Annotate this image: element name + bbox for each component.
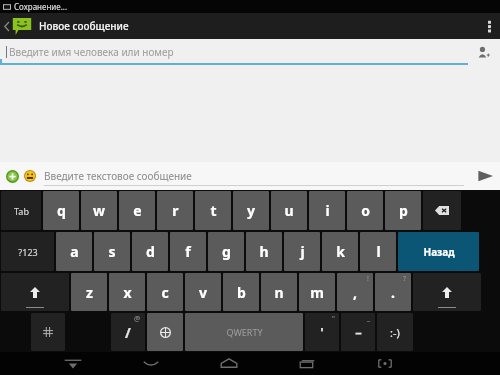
staticText: , [353, 283, 357, 302]
button[interactable]: k [322, 232, 358, 271]
button[interactable]: u [271, 191, 307, 230]
button[interactable] [413, 273, 481, 311]
button[interactable]: Screenshot [372, 352, 398, 375]
staticText: ' [320, 323, 324, 341]
staticText: j [300, 242, 305, 261]
staticText: k [336, 242, 345, 261]
button[interactable]: Введите имя человека или номер [6, 39, 466, 65]
staticText: f [185, 242, 191, 261]
staticText: h [259, 242, 269, 261]
staticText: y [247, 201, 255, 220]
button[interactable]: o [347, 191, 383, 230]
button[interactable]: f [170, 232, 206, 271]
staticText: q [57, 201, 66, 220]
button[interactable]: ?123 [1, 232, 54, 271]
button[interactable]: Emoji [22, 168, 38, 184]
staticText: ?123 [18, 246, 38, 258]
staticText: v [199, 283, 207, 302]
staticText: w [93, 201, 105, 220]
button[interactable]: j [284, 232, 320, 271]
staticText: i [325, 201, 330, 220]
button[interactable]: g [208, 232, 244, 271]
button[interactable]: a [56, 232, 92, 271]
staticText: " [332, 314, 335, 324]
button[interactable]: m [299, 273, 335, 311]
button[interactable]: Add contact [466, 39, 500, 65]
staticText: a [70, 242, 79, 261]
staticText: Новое сообщение [39, 19, 129, 33]
staticText: . [391, 283, 395, 302]
button[interactable]: c [147, 273, 183, 311]
button[interactable]: Новое сообщение [0, 13, 135, 39]
staticText: m [310, 283, 324, 302]
button[interactable]: Attach [4, 168, 20, 184]
staticText: o [361, 201, 370, 220]
staticText: _ [367, 314, 371, 324]
staticText: Назад [423, 245, 455, 259]
button[interactable]: / [111, 313, 145, 351]
button[interactable]: Send [470, 162, 500, 190]
button[interactable]: – [341, 313, 375, 351]
button[interactable]: , [337, 273, 373, 311]
button[interactable]: . [375, 273, 411, 311]
button[interactable] [31, 313, 65, 351]
button[interactable]: t [195, 191, 231, 230]
staticText: r [172, 201, 179, 220]
staticText: x [123, 283, 132, 302]
staticText: Введите имя человека или номер [9, 45, 174, 59]
button[interactable]: e [119, 191, 155, 230]
button[interactable]: x [109, 273, 145, 311]
button[interactable]: q [43, 191, 79, 230]
staticText: QWERTY [226, 326, 263, 338]
button[interactable]: h [246, 232, 282, 271]
button[interactable]: Recent apps [294, 352, 320, 375]
staticText: / [125, 323, 131, 342]
staticText: Введите текстовое сообщение [44, 169, 192, 183]
staticText: l [376, 242, 381, 261]
staticText: c [161, 283, 169, 302]
button[interactable]: Tab [1, 191, 41, 230]
staticText: :-) [390, 325, 400, 340]
button[interactable]: Back [138, 352, 164, 375]
button[interactable]: v [185, 273, 221, 311]
button[interactable]: s [94, 232, 130, 271]
button[interactable]: i [309, 191, 345, 230]
button[interactable]: b [223, 273, 259, 311]
staticText: Tab [14, 205, 29, 217]
staticText: n [274, 283, 284, 302]
button[interactable]: QWERTY [185, 313, 303, 351]
staticText: p [399, 201, 408, 220]
button[interactable]: Home [216, 352, 242, 375]
button[interactable]: Hide keyboard [60, 352, 86, 375]
staticText: z [86, 283, 93, 302]
button[interactable]: p [385, 191, 421, 230]
button[interactable]: y [233, 191, 269, 230]
button[interactable]: r [157, 191, 193, 230]
staticText: ! [367, 274, 369, 284]
staticText: g [222, 242, 231, 261]
button[interactable] [147, 313, 183, 351]
button[interactable]: w [81, 191, 117, 230]
button[interactable] [423, 191, 461, 230]
button[interactable]: :-) [377, 313, 413, 351]
staticText: b [237, 283, 246, 302]
staticText: d [146, 242, 155, 261]
button[interactable] [1, 273, 69, 311]
button[interactable]: n [261, 273, 297, 311]
staticText: t [210, 201, 217, 220]
staticText: u [284, 201, 294, 220]
button[interactable]: l [360, 232, 396, 271]
staticText: e [133, 201, 142, 220]
button[interactable]: Введите текстовое сообщение [44, 162, 464, 190]
staticText: s [108, 242, 116, 261]
button[interactable]: z [71, 273, 107, 311]
button[interactable]: d [132, 232, 168, 271]
staticText: – [355, 323, 362, 341]
staticText: ? [403, 274, 407, 284]
button[interactable]: Назад [398, 232, 479, 271]
button[interactable]: ' [305, 313, 339, 351]
button[interactable]: More options [478, 13, 500, 39]
staticText: @ [134, 314, 141, 324]
